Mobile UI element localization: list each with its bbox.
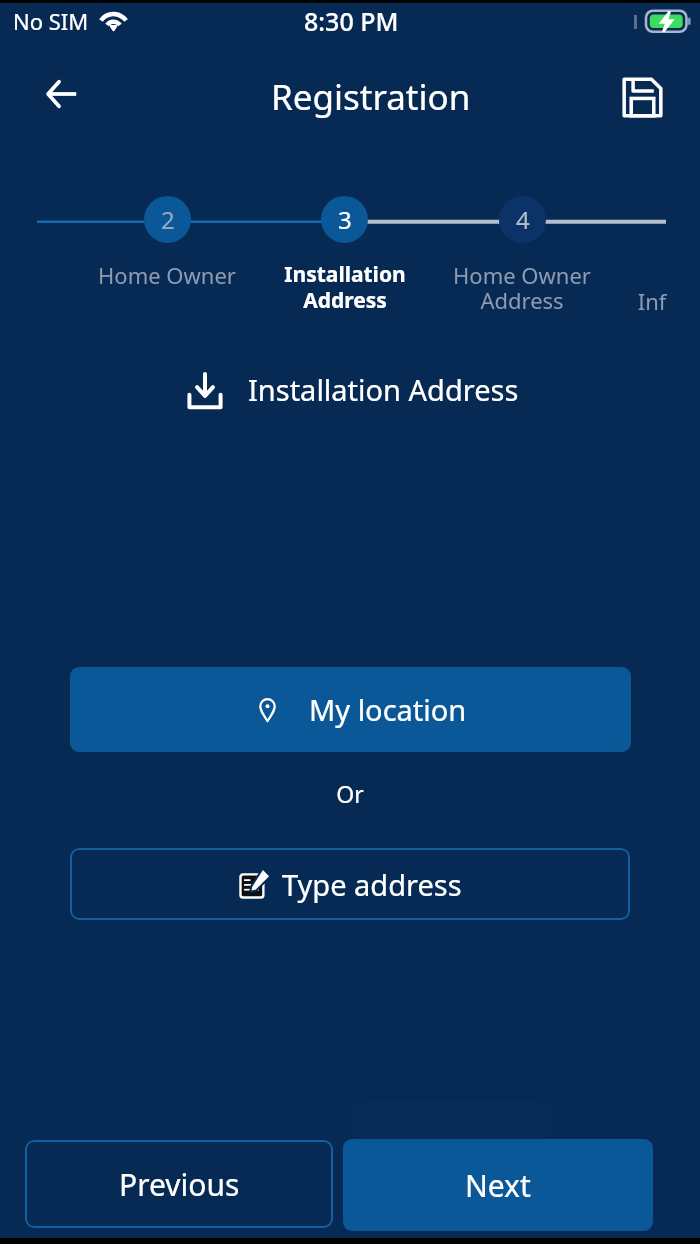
button[interactable]: 3 bbox=[321, 196, 368, 243]
button[interactable]: 2 bbox=[144, 196, 191, 243]
staticText: 3 bbox=[338, 203, 352, 236]
button[interactable]: Type address bbox=[70, 848, 630, 920]
staticText: Type address bbox=[282, 865, 462, 904]
button[interactable]: Back bbox=[35, 67, 88, 120]
staticText: Registration bbox=[271, 73, 471, 121]
staticText: 2 bbox=[161, 203, 175, 236]
button[interactable]: Next bbox=[343, 1139, 653, 1231]
staticText: 8:30 PM bbox=[304, 4, 399, 38]
staticText: Previous bbox=[119, 1164, 240, 1205]
staticText: Information bbox=[611, 286, 667, 316]
button[interactable]: My location bbox=[70, 667, 631, 752]
staticText: My location bbox=[309, 690, 467, 729]
staticText: Or bbox=[0, 778, 700, 809]
staticText: Installation Address bbox=[248, 370, 519, 409]
button[interactable]: Save bbox=[616, 71, 669, 124]
button[interactable]: Previous bbox=[25, 1140, 333, 1228]
button[interactable]: 4 bbox=[499, 196, 546, 243]
staticText: Home Owner Address bbox=[433, 260, 611, 316]
staticText: Installation Address bbox=[256, 260, 434, 315]
staticText: Next bbox=[465, 1165, 531, 1206]
staticText: Home Owner bbox=[78, 260, 256, 290]
staticText: 4 bbox=[516, 203, 530, 236]
staticText: No SIM bbox=[13, 6, 89, 36]
